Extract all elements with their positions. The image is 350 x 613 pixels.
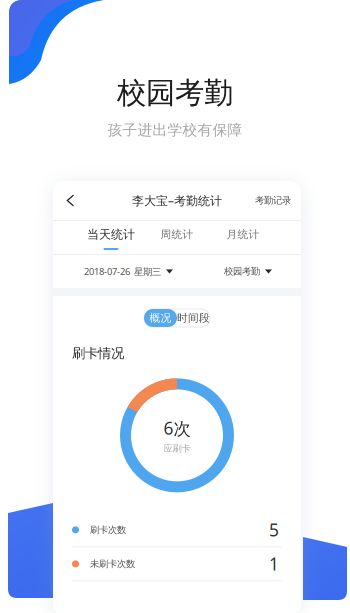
staticText: 刷卡次数: [90, 524, 126, 536]
staticText: 2018-07-26 星期三: [84, 265, 161, 278]
staticText: 校园考勤: [224, 266, 260, 277]
button[interactable]: 校园考勤: [224, 260, 272, 283]
staticText: 概况: [149, 311, 171, 324]
button[interactable]: 概况: [144, 309, 177, 327]
button[interactable]: 考勤记录: [251, 189, 295, 212]
button[interactable]: 返回: [61, 187, 80, 214]
button[interactable]: 月统计: [210, 221, 276, 254]
button[interactable]: 2018-07-26 星期三: [84, 259, 173, 284]
staticText: 应刷卡: [163, 443, 190, 454]
button[interactable]: 周统计: [144, 221, 210, 254]
staticText: 刷卡情况: [72, 345, 124, 361]
staticText: 月统计: [226, 228, 259, 241]
button[interactable]: 时间段: [177, 309, 210, 327]
staticText: 校园考勤: [117, 75, 233, 111]
staticText: 6次: [163, 417, 190, 440]
button[interactable]: 刷卡次数: [53, 513, 301, 546]
staticText: 未刷卡次数: [90, 558, 135, 570]
staticText: 孩子进出学校有保障: [107, 121, 242, 139]
staticText: 时间段: [177, 311, 210, 324]
staticText: 5: [269, 518, 279, 541]
button[interactable]: 当天统计: [78, 221, 144, 254]
staticText: 考勤记录: [255, 195, 291, 206]
staticText: 李大宝–考勤统计: [132, 192, 222, 208]
button[interactable]: 未刷卡次数: [53, 547, 301, 580]
staticText: 周统计: [160, 228, 193, 241]
staticText: 1: [269, 552, 279, 575]
staticText: 当天统计: [87, 227, 135, 242]
